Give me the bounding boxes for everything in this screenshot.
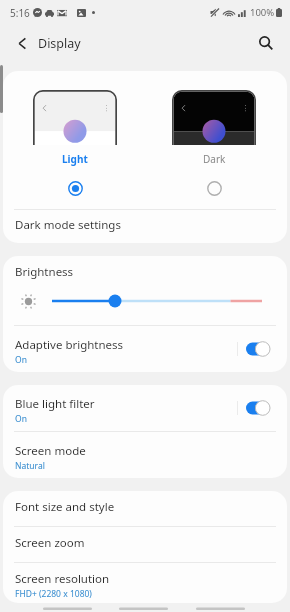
staticText: Font size and style [15, 499, 115, 515]
staticText: Brightness [15, 264, 74, 280]
staticText: Dark [203, 152, 226, 166]
button[interactable]: Font size and style [3, 491, 287, 526]
button[interactable]: Dark mode settings [3, 210, 287, 243]
button[interactable]: Adaptive brightness [3, 326, 287, 372]
button[interactable]: Blue light filter [3, 385, 287, 431]
button[interactable]: Back [10, 31, 34, 55]
button[interactable]: Toggle Blue light filter [246, 400, 270, 416]
button[interactable]: Brightness slider [52, 293, 262, 309]
staticText: Screen mode [15, 443, 86, 459]
button[interactable]: Screen mode [3, 432, 287, 478]
staticText: FHD+ (2280 x 1080) [15, 588, 92, 600]
button[interactable]: Search [254, 31, 278, 55]
button[interactable]: Dark [172, 71, 256, 196]
staticText: Screen zoom [15, 535, 85, 551]
staticText: On [15, 413, 27, 425]
staticText: 100% [250, 6, 275, 19]
staticText: Display [38, 35, 81, 52]
staticText: Adaptive brightness [15, 337, 124, 353]
staticText: Dark mode settings [15, 217, 121, 233]
staticText: 5:16 [10, 6, 30, 20]
staticText: On [15, 354, 27, 366]
staticText: Natural [15, 460, 45, 472]
button[interactable]: Screen resolution [3, 563, 287, 603]
button[interactable]: Screen zoom [3, 527, 287, 562]
staticText: Blue light filter [15, 396, 95, 412]
staticText: Screen resolution [15, 571, 110, 587]
button[interactable]: Light [33, 71, 117, 196]
button[interactable]: Toggle Adaptive brightness [246, 341, 270, 357]
staticText: Light [62, 152, 88, 166]
